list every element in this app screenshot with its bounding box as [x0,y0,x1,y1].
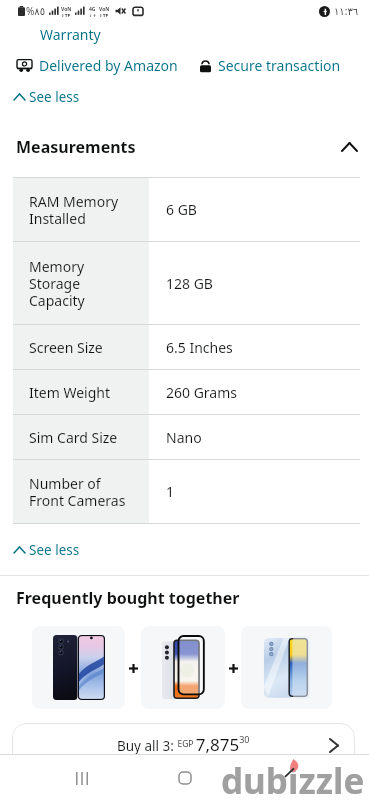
staticText: Nano [166,428,202,447]
button[interactable]: Recents [62,758,102,798]
button[interactable]: See less [0,541,80,559]
button[interactable]: Home [165,758,205,798]
staticText: Memory Storage Capacity [29,257,85,310]
staticText: VoN [99,6,110,13]
staticText: See less [29,88,80,106]
staticText: LTE [62,13,71,17]
button[interactable]: See less [0,88,80,106]
button[interactable] [141,626,225,709]
staticText: Sim Card Size [29,428,118,447]
staticText: Screen Size [29,338,103,357]
staticText: Measurements [16,136,136,158]
staticText: Number of Front Cameras [29,474,126,510]
staticText: See less [29,541,80,559]
staticText: 128 GB [166,274,213,293]
staticText: Secure transaction [218,56,341,75]
staticText: RAM Memory Installed [29,192,119,228]
staticText: 6.5 Inches [166,338,233,357]
staticText: ↓↑ [88,13,97,17]
staticText: Frequently bought together [16,587,240,609]
button[interactable]: Measurements [0,136,369,158]
button[interactable]: Back [267,758,307,798]
button[interactable]: Buy all 3: EGP 7,87530 [12,723,355,783]
staticText: 1 [166,482,175,501]
staticText: Delivered by Amazon [39,56,178,75]
staticText: Buy all 3: EGP 7,87530 [117,733,250,756]
other: See bundle [330,739,338,752]
staticText: LTE [100,13,109,17]
staticText: 260 Grams [166,383,238,402]
button[interactable]: Delivered by Amazon [17,56,178,75]
staticText: ١١:٣٦ [334,4,359,18]
staticText: %٨٥ [26,4,46,18]
staticText: 6 GB [166,200,197,219]
button[interactable]: Warranty [40,25,101,44]
staticText: dubizzle [221,757,365,800]
staticText: Item Weight [29,383,110,402]
button[interactable] [32,626,125,709]
staticText: 4G [89,6,96,13]
button[interactable]: Secure transaction [200,56,341,75]
button[interactable] [241,626,332,709]
staticText: VoN [61,6,72,13]
